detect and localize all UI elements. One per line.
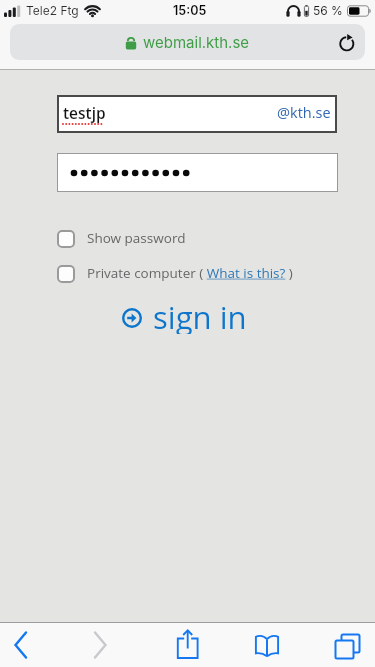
- staticText: 56 %: [313, 3, 343, 18]
- staticText: sign in: [153, 296, 247, 334]
- button[interactable]: [339, 34, 356, 51]
- staticText: webmail.kth.se: [143, 33, 250, 51]
- button[interactable]: [10, 630, 32, 660]
- staticText: Private computer ( What is this? ): [87, 264, 293, 282]
- staticText: Show password: [87, 229, 186, 247]
- button[interactable]: [333, 631, 361, 659]
- button[interactable]: [57, 153, 338, 192]
- button[interactable]: Private computer ( What is this? ): [57, 264, 293, 284]
- button[interactable]: webmail.kth.se: [10, 24, 365, 60]
- staticText: testjp: [63, 102, 106, 123]
- button[interactable]: [89, 630, 111, 660]
- staticText: Tele2 Ftg: [26, 3, 79, 18]
- button[interactable]: Show password: [57, 229, 186, 249]
- button[interactable]: sign in: [120, 296, 247, 340]
- staticText: 15:05: [173, 3, 207, 18]
- button[interactable]: [253, 631, 281, 659]
- staticText: @kth.se: [277, 103, 331, 123]
- button[interactable]: testjp: [57, 95, 337, 133]
- button[interactable]: [173, 629, 203, 659]
